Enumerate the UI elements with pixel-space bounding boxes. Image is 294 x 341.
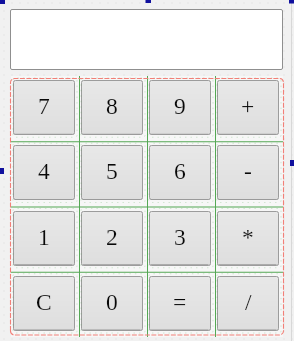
staticText: + (241, 93, 255, 119)
button[interactable]: 7 (13, 80, 75, 135)
staticText: 7 (38, 93, 50, 119)
button[interactable]: 4 (13, 145, 75, 200)
staticText: 5 (106, 158, 118, 184)
button[interactable]: 0 (81, 276, 143, 331)
button[interactable]: - (217, 145, 279, 200)
staticText: 1 (38, 224, 50, 250)
staticText: 0 (106, 289, 118, 315)
staticText: 6 (174, 158, 186, 184)
staticText: 4 (38, 158, 50, 184)
button[interactable]: 9 (149, 80, 211, 135)
staticText: * (242, 224, 254, 250)
button[interactable]: 5 (81, 145, 143, 200)
button[interactable]: 6 (149, 145, 211, 200)
button[interactable]: 8 (81, 80, 143, 135)
button[interactable]: / (217, 276, 279, 331)
button[interactable]: C (13, 276, 75, 331)
staticText: / (245, 289, 252, 315)
staticText: 9 (174, 93, 186, 119)
button[interactable]: + (217, 80, 279, 135)
staticText: = (173, 289, 187, 315)
button[interactable]: 2 (81, 211, 143, 266)
button[interactable]: 1 (13, 211, 75, 266)
staticText: 2 (106, 224, 118, 250)
staticText: - (244, 158, 252, 184)
button[interactable]: 3 (149, 211, 211, 266)
staticText: 8 (106, 93, 118, 119)
button[interactable]: = (149, 276, 211, 331)
button[interactable]: * (217, 211, 279, 266)
staticText: C (36, 289, 52, 315)
staticText: 3 (174, 224, 186, 250)
button[interactable] (10, 9, 283, 70)
